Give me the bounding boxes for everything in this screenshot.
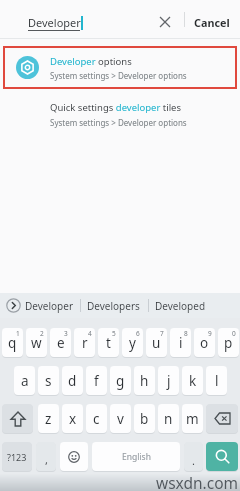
staticText: t <box>106 334 111 352</box>
button[interactable]: o <box>194 328 215 357</box>
button[interactable]: English <box>92 442 180 471</box>
staticText: 8 <box>184 329 188 338</box>
staticText: h <box>140 372 149 390</box>
staticText: v <box>117 410 124 428</box>
button[interactable]: n <box>158 404 179 433</box>
staticText: p <box>224 334 233 352</box>
staticText: 6 <box>136 329 140 338</box>
button[interactable]: v <box>110 404 131 433</box>
staticText: g <box>116 372 125 390</box>
staticText: 5 <box>112 329 116 338</box>
staticText: u <box>152 334 161 352</box>
staticText: Developers <box>87 299 140 313</box>
staticText: i <box>179 334 183 352</box>
staticText: English <box>122 451 151 463</box>
button[interactable]: h <box>134 366 155 395</box>
button[interactable]: ?123 <box>2 442 32 471</box>
staticText: x <box>69 410 77 428</box>
button[interactable]: s <box>38 366 59 395</box>
button[interactable]: t <box>98 328 119 357</box>
staticText: Cancel <box>194 15 230 30</box>
staticText: q <box>8 334 17 352</box>
button[interactable]: f <box>86 366 107 395</box>
staticText: wsxdn.com <box>156 472 239 489</box>
staticText: f <box>94 372 99 390</box>
button[interactable] <box>206 442 238 471</box>
staticText: 4 <box>88 329 92 338</box>
staticText: m <box>186 410 199 428</box>
staticText: w <box>31 334 42 352</box>
staticText: b <box>140 410 149 428</box>
button[interactable]: Developer options <box>3 46 237 89</box>
button[interactable]: u <box>146 328 167 357</box>
staticText: 0 <box>232 329 236 338</box>
button[interactable]: q <box>2 328 23 357</box>
staticText: z <box>45 410 52 428</box>
button[interactable]: Developers <box>87 293 140 318</box>
staticText: y <box>129 334 136 352</box>
staticText: e <box>57 334 65 352</box>
staticText: 1 <box>16 329 20 338</box>
staticText: 2 <box>40 329 44 338</box>
button[interactable]: j <box>158 366 179 395</box>
staticText: System settings > Developer options <box>50 70 187 81</box>
staticText: r <box>82 334 88 352</box>
staticText: d <box>68 372 77 390</box>
button[interactable]: Quick settings developer tiles <box>50 101 187 128</box>
button[interactable]: w <box>26 328 47 357</box>
button[interactable]: . <box>184 442 203 471</box>
staticText: Developer <box>28 15 81 30</box>
staticText: Developed <box>155 299 206 313</box>
button[interactable] <box>6 298 21 313</box>
staticText: n <box>164 410 173 428</box>
button[interactable]: z <box>38 404 59 433</box>
button[interactable]: x <box>62 404 83 433</box>
button[interactable]: Cancel <box>190 11 234 33</box>
staticText: ?123 <box>7 451 27 463</box>
button[interactable]: b <box>134 404 155 433</box>
button[interactable]: a <box>14 366 35 395</box>
button[interactable]: i <box>170 328 191 357</box>
staticText: l <box>215 372 219 390</box>
staticText: o <box>200 334 209 352</box>
staticText: s <box>45 372 52 390</box>
button[interactable]: y <box>122 328 143 357</box>
button[interactable] <box>60 442 88 471</box>
button[interactable] <box>152 9 178 35</box>
staticText: , <box>45 452 48 467</box>
staticText: 7 <box>160 329 164 338</box>
button[interactable]: r <box>74 328 95 357</box>
button[interactable]: Developed <box>155 293 206 318</box>
staticText: 3 <box>64 329 68 338</box>
staticText: System settings > Developer options <box>50 117 187 128</box>
button[interactable]: p <box>218 328 239 357</box>
button[interactable]: k <box>182 366 203 395</box>
button[interactable]: g <box>110 366 131 395</box>
button[interactable]: m <box>182 404 203 433</box>
button[interactable]: , <box>36 442 56 471</box>
staticText: k <box>189 372 197 390</box>
button[interactable]: d <box>62 366 83 395</box>
staticText: Quick settings developer tiles <box>50 101 182 114</box>
staticText: Developer <box>25 299 74 313</box>
staticText: Developer options <box>50 55 132 68</box>
button[interactable]: c <box>86 404 107 433</box>
staticText: . <box>192 453 195 468</box>
button[interactable]: l <box>206 366 227 395</box>
staticText: a <box>21 372 29 390</box>
button[interactable] <box>206 404 238 433</box>
button[interactable]: Developer <box>25 293 74 318</box>
staticText: 9 <box>208 329 212 338</box>
button[interactable] <box>2 404 33 433</box>
staticText: j <box>167 372 171 390</box>
button[interactable]: e <box>50 328 71 357</box>
staticText: c <box>93 410 100 428</box>
